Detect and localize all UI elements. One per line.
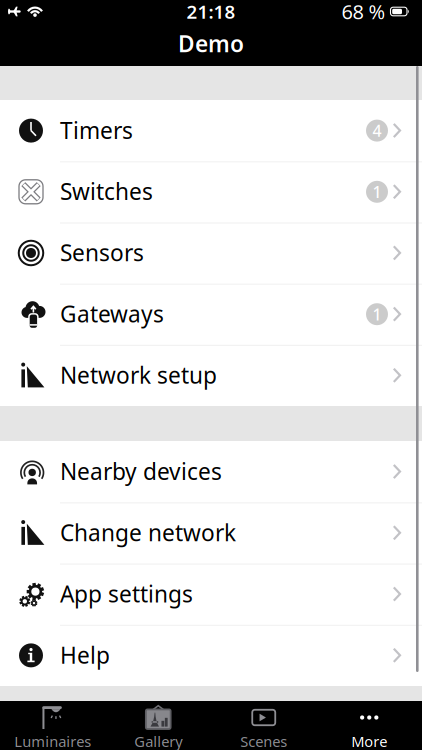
staticText: App settings: [60, 579, 193, 609]
button[interactable]: Scenes: [211, 701, 316, 750]
button[interactable]: Gateways: [0, 284, 422, 345]
button[interactable]: Nearby devices: [0, 441, 422, 502]
staticText: Timers: [60, 115, 133, 145]
button[interactable]: App settings: [0, 563, 422, 625]
button[interactable]: Switches: [0, 161, 422, 222]
button[interactable]: Change network: [0, 502, 422, 563]
staticText: 4: [372, 120, 381, 141]
button[interactable]: Network setup: [0, 345, 422, 406]
staticText: Gallery: [134, 731, 182, 750]
staticText: 68 %: [341, 0, 385, 25]
staticText: 21:18: [186, 0, 235, 24]
staticText: More: [351, 731, 387, 750]
button[interactable]: Gallery: [105, 701, 211, 750]
staticText: Gateways: [60, 299, 164, 329]
staticText: Network setup: [60, 360, 217, 390]
staticText: Demo: [178, 28, 244, 58]
staticText: 1: [372, 304, 381, 325]
staticText: Luminaires: [14, 731, 91, 750]
staticText: Help: [60, 640, 110, 670]
staticText: Scenes: [240, 731, 287, 750]
staticText: Change network: [60, 517, 236, 547]
staticText: Nearby devices: [60, 456, 222, 486]
button[interactable]: Timers: [0, 100, 422, 161]
button[interactable]: Luminaires: [0, 701, 105, 750]
button[interactable]: More: [316, 701, 422, 750]
staticText: 1: [372, 181, 381, 202]
staticText: Sensors: [60, 237, 144, 267]
button[interactable]: Help: [0, 625, 422, 686]
staticText: Switches: [60, 176, 153, 206]
button[interactable]: Sensors: [0, 222, 422, 284]
